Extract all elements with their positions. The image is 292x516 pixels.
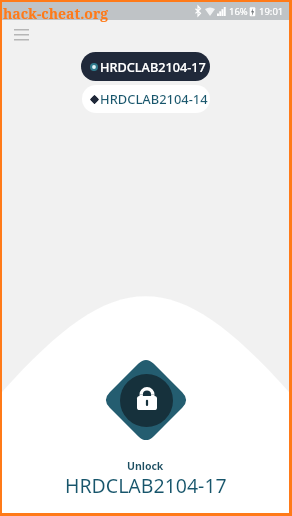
staticText: HRDCLAB2104-17 — [100, 58, 206, 75]
staticText: 19:01 — [259, 5, 284, 18]
button[interactable]: Menu — [7, 20, 35, 48]
staticText: 16% — [229, 5, 248, 18]
staticText: Unlock — [127, 459, 164, 473]
button[interactable]: HRDCLAB2104-14 — [82, 85, 210, 113]
staticText: HRDCLAB2104-14 — [100, 90, 208, 108]
button[interactable]: HRDCLAB2104-17 — [81, 52, 210, 81]
staticText: hack-cheat.org — [3, 4, 109, 23]
staticText: HRDCLAB2104-17 — [65, 472, 227, 499]
button[interactable]: Unlock — [102, 356, 190, 444]
